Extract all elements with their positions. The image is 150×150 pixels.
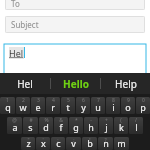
- staticText: ": [27, 137, 30, 144]
- button[interactable]: Key n: [98, 137, 113, 150]
- staticText: o: [125, 101, 131, 113]
- staticText: #: [29, 117, 33, 124]
- staticText: Hel: [17, 77, 33, 91]
- button[interactable]: Key r: [46, 97, 60, 114]
- staticText: w: [19, 101, 27, 113]
- staticText: q: [5, 101, 11, 113]
- staticText: -: [90, 117, 92, 124]
- button[interactable]: Key o: [121, 97, 135, 114]
- staticText: 0: [142, 97, 145, 104]
- button[interactable]: Key z: [21, 137, 35, 150]
- staticText: j: [105, 121, 108, 133]
- button[interactable]: Key x: [36, 137, 50, 150]
- staticText: u: [95, 101, 101, 113]
- staticText: 3: [37, 97, 40, 104]
- staticText: 8: [112, 97, 115, 104]
- staticText: m: [117, 137, 126, 149]
- staticText: a: [12, 121, 18, 133]
- staticText: 7: [97, 97, 100, 104]
- staticText: (: [120, 117, 122, 124]
- staticText: ;: [73, 137, 75, 144]
- staticText: 2: [22, 97, 25, 104]
- button[interactable]: Key b: [82, 137, 97, 150]
- button[interactable]: Hel: [4, 44, 146, 74]
- staticText: 1: [6, 97, 9, 104]
- button[interactable]: Key v: [66, 137, 81, 150]
- button[interactable]: Subject: [5, 16, 145, 33]
- staticText: r: [51, 101, 55, 113]
- button[interactable]: Key d: [39, 117, 53, 134]
- staticText: n: [103, 137, 109, 149]
- staticText: l: [135, 121, 138, 133]
- button[interactable]: Help: [101, 73, 150, 94]
- staticText: c: [56, 137, 61, 149]
- button[interactable]: Key j: [99, 117, 113, 134]
- staticText: +: [105, 117, 108, 124]
- button[interactable]: Hello: [51, 73, 100, 94]
- staticText: g: [73, 121, 79, 133]
- staticText: &: [59, 117, 63, 124]
- button[interactable]: Key i: [106, 97, 120, 114]
- staticText: %: [44, 117, 49, 124]
- staticText: d: [43, 121, 49, 133]
- staticText: b: [87, 137, 93, 149]
- button[interactable]: Key g: [69, 117, 83, 134]
- button[interactable]: Key q: [0, 97, 15, 114]
- staticText: 6: [82, 97, 85, 104]
- staticText: 4: [52, 97, 55, 104]
- staticText: k: [119, 121, 124, 133]
- button[interactable]: Key e: [31, 97, 45, 114]
- button[interactable]: Key s: [23, 117, 38, 134]
- staticText: t: [66, 101, 70, 113]
- staticText: :: [57, 137, 59, 144]
- button[interactable]: Hel: [0, 73, 50, 94]
- staticText: v: [71, 137, 76, 149]
- staticText: h: [88, 121, 94, 133]
- button[interactable]: Key w: [16, 97, 30, 114]
- button[interactable]: Key p: [136, 97, 150, 114]
- staticText: /: [135, 117, 137, 124]
- staticText: To: [11, 0, 20, 9]
- staticText: *: [75, 117, 78, 124]
- button[interactable]: To: [5, 0, 145, 10]
- staticText: x: [41, 137, 46, 149]
- staticText: ?: [104, 137, 107, 144]
- staticText: y: [81, 101, 86, 113]
- staticText: Hel: [9, 47, 24, 59]
- button[interactable]: Key c: [51, 137, 65, 150]
- button[interactable]: Key k: [114, 117, 128, 134]
- staticText: s: [28, 121, 33, 133]
- staticText: !: [89, 137, 91, 144]
- staticText: 9: [127, 97, 130, 104]
- staticText: f: [59, 121, 63, 133]
- staticText: z: [26, 137, 31, 149]
- button[interactable]: Key h: [84, 117, 98, 134]
- button[interactable]: Key l: [129, 117, 143, 134]
- staticText: ': [42, 137, 44, 144]
- button[interactable]: Key u: [91, 97, 105, 114]
- staticText: Subject: [11, 19, 39, 30]
- staticText: e: [35, 101, 41, 113]
- button[interactable]: Key f: [54, 117, 68, 134]
- button[interactable]: Key t: [61, 97, 75, 114]
- staticText: Hello: [63, 77, 89, 91]
- button[interactable]: Key m: [114, 137, 129, 150]
- staticText: Help: [115, 77, 137, 91]
- button[interactable]: Key y: [76, 97, 90, 114]
- staticText: p: [140, 101, 146, 113]
- staticText: ,: [121, 137, 123, 144]
- staticText: i: [112, 101, 115, 113]
- staticText: 5: [67, 97, 70, 104]
- button[interactable]: Key a: [7, 117, 22, 134]
- staticText: @: [12, 117, 17, 124]
